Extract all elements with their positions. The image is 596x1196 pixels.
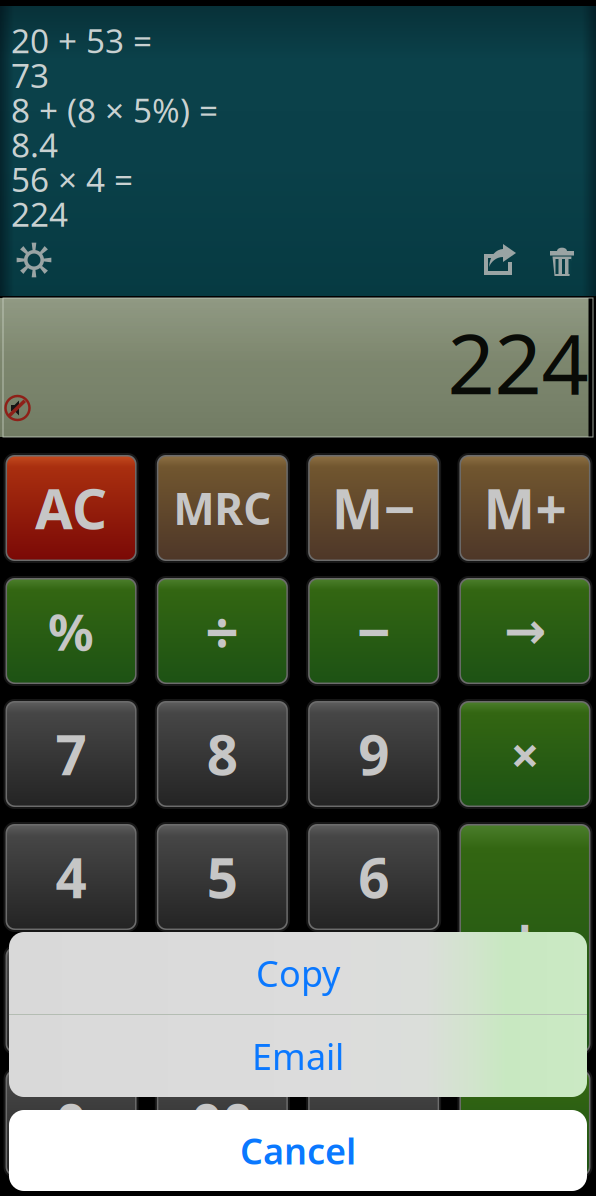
staticText: 8 + (8 × 5%) =: [11, 88, 218, 132]
staticText: 0: [56, 1087, 87, 1159]
button[interactable]: MRC: [155, 453, 290, 563]
staticText: Copy: [256, 949, 340, 997]
staticText: 8: [207, 718, 238, 790]
staticText: 3: [358, 964, 389, 1036]
button[interactable]: %: [4, 576, 139, 686]
button[interactable]: 9: [306, 699, 441, 809]
staticText: 8.4: [11, 122, 58, 167]
staticText: +: [506, 896, 543, 981]
button[interactable]: 6: [306, 822, 441, 932]
button[interactable]: Email: [9, 1015, 587, 1097]
button[interactable]: 3: [306, 945, 441, 1055]
staticText: MRC: [173, 479, 271, 537]
button[interactable]: 1: [4, 945, 139, 1055]
staticText: 2: [207, 964, 238, 1036]
staticText: =: [506, 1080, 543, 1165]
staticText: M−: [332, 472, 416, 544]
button[interactable]: Settings: [12, 238, 56, 282]
staticText: 20 + 53 =: [11, 18, 152, 62]
staticText: Email: [252, 1032, 344, 1080]
staticText: 6: [358, 841, 389, 913]
staticText: →: [504, 602, 546, 660]
staticText: ×: [510, 720, 539, 788]
button[interactable]: ÷: [155, 576, 290, 686]
button[interactable]: 2: [155, 945, 290, 1055]
button[interactable]: 00: [155, 1068, 290, 1178]
staticText: AC: [35, 472, 107, 544]
staticText: 7: [56, 718, 87, 790]
button[interactable]: M+: [457, 453, 592, 563]
button[interactable]: .: [306, 1068, 441, 1178]
staticText: −: [357, 592, 391, 670]
button[interactable]: Cancel: [9, 1110, 587, 1191]
button[interactable]: →: [457, 576, 592, 686]
button[interactable]: ×: [457, 699, 592, 809]
button[interactable]: =: [457, 1068, 592, 1178]
staticText: 00: [191, 1087, 253, 1159]
button[interactable]: Copy: [9, 932, 587, 1014]
staticText: 224: [11, 192, 68, 236]
button[interactable]: −: [306, 576, 441, 686]
staticText: 4: [56, 841, 87, 913]
staticText: Cancel: [240, 1127, 356, 1174]
staticText: 5: [207, 841, 238, 913]
staticText: 1: [56, 964, 87, 1036]
staticText: 9: [358, 718, 389, 790]
staticText: 224: [447, 307, 588, 417]
button[interactable]: Share: [477, 238, 521, 282]
staticText: 56 × 4 =: [11, 157, 133, 201]
staticText: M+: [483, 472, 566, 544]
button[interactable]: 0: [4, 1068, 139, 1178]
staticText: ÷: [205, 592, 239, 670]
button[interactable]: 4: [4, 822, 139, 932]
button[interactable]: AC: [4, 453, 139, 563]
button[interactable]: Delete history: [540, 238, 584, 282]
staticText: 73: [11, 53, 49, 97]
button[interactable]: 5: [155, 822, 290, 932]
button[interactable]: M−: [306, 453, 441, 563]
staticText: .: [366, 1087, 381, 1159]
staticText: %: [48, 597, 94, 665]
button[interactable]: +: [457, 822, 592, 1055]
button[interactable]: 8: [155, 699, 290, 809]
button[interactable]: 7: [4, 699, 139, 809]
